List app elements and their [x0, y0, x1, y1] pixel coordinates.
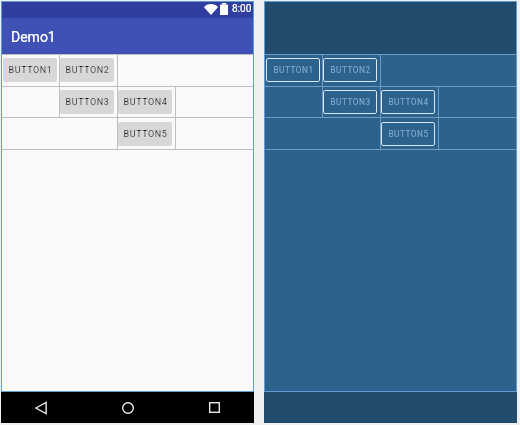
staticText: BUTTON3 — [65, 97, 110, 108]
button[interactable]: BUTTON1 — [266, 58, 320, 82]
staticText: BUTTON5 — [123, 129, 168, 140]
button[interactable]: BUTTON4 — [118, 90, 172, 114]
staticText: BUTTON3 — [330, 97, 371, 107]
button[interactable]: BUTTON3 — [60, 90, 114, 114]
button[interactable]: BUTTON2 — [323, 58, 377, 82]
button[interactable]: BUTTON5 — [381, 122, 435, 146]
staticText: BUTTON5 — [388, 129, 429, 139]
staticText: 8:00 — [232, 3, 252, 15]
button[interactable]: BUTTON1 — [3, 58, 57, 82]
button[interactable]: BUTTON3 — [323, 90, 377, 114]
button[interactable]: Recent apps — [199, 392, 229, 423]
staticText: BUTTON2 — [65, 65, 110, 76]
staticText: BUTTON4 — [388, 97, 429, 107]
button[interactable]: Demo1 — [2, 18, 253, 54]
button[interactable]: BUTTON2 — [60, 58, 114, 82]
button[interactable]: BUTTON5 — [118, 122, 172, 146]
button[interactable]: BUTTON4 — [381, 90, 435, 114]
staticText: Demo1 — [11, 29, 56, 45]
staticText: BUTTON4 — [123, 97, 168, 108]
staticText: BUTTON2 — [330, 65, 371, 75]
button[interactable]: Back — [26, 392, 56, 423]
staticText: BUTTON1 — [8, 65, 53, 76]
button[interactable]: Home — [113, 392, 143, 423]
staticText: BUTTON1 — [273, 65, 314, 75]
